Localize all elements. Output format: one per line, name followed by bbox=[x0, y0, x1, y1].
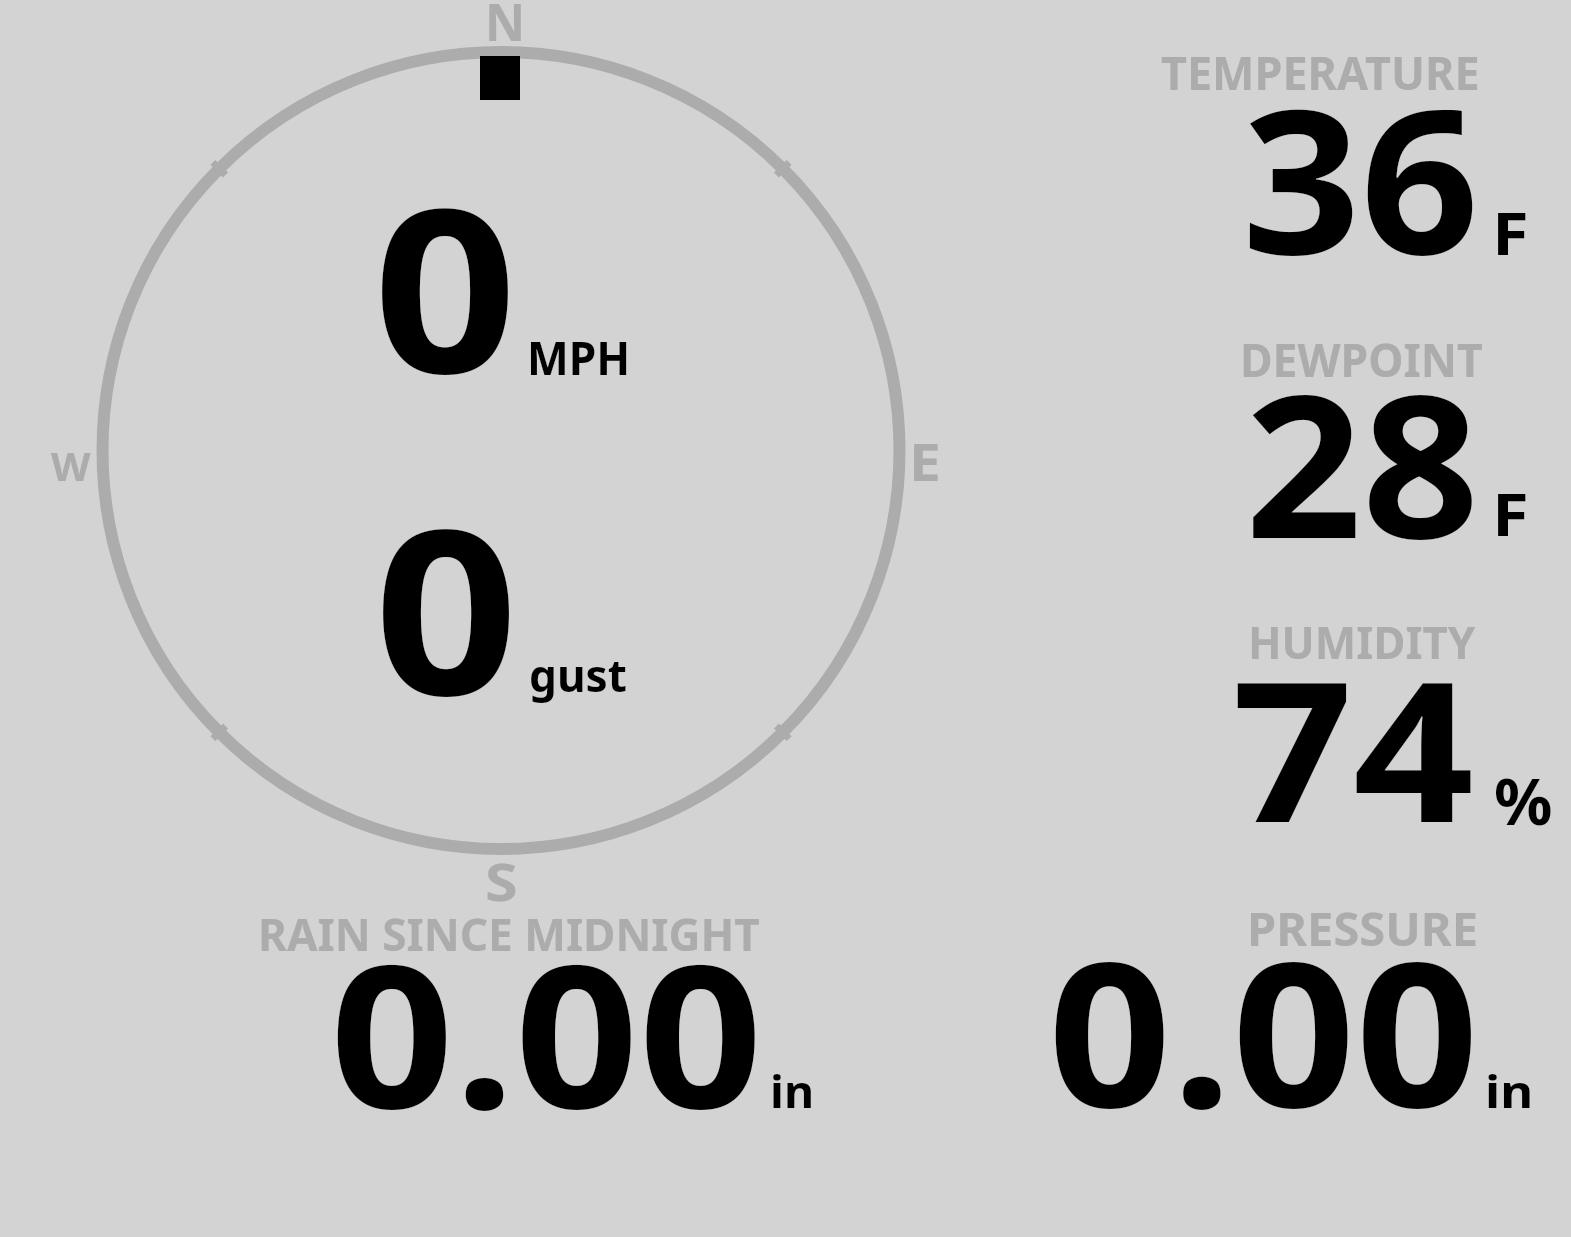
staticText: S bbox=[485, 845, 518, 916]
staticText: 28 bbox=[1245, 327, 1480, 596]
button[interactable]: Wind direction and speed bbox=[90, 0, 910, 910]
staticText: MPH bbox=[527, 325, 630, 389]
staticText: in bbox=[1485, 1060, 1534, 1121]
button[interactable] bbox=[230, 895, 850, 1125]
staticText: N bbox=[485, 0, 525, 57]
staticText: % bbox=[1494, 755, 1553, 844]
button[interactable] bbox=[1100, 30, 1571, 290]
staticText: 0.00 bbox=[1048, 894, 1480, 1165]
staticText: F bbox=[1492, 192, 1530, 272]
staticText: RAIN SINCE MIDNIGHT bbox=[258, 903, 760, 964]
staticText: 36 bbox=[1242, 41, 1479, 312]
staticText: 0 bbox=[374, 451, 519, 762]
staticText: 0 bbox=[373, 131, 518, 439]
staticText: TEMPERATURE bbox=[1161, 41, 1480, 103]
staticText: W bbox=[51, 440, 91, 493]
staticText: PRESSURE bbox=[1247, 896, 1478, 960]
button[interactable] bbox=[1100, 600, 1571, 855]
button[interactable] bbox=[1100, 315, 1571, 575]
staticText: 0.00 bbox=[330, 896, 763, 1166]
staticText: F bbox=[1492, 473, 1530, 553]
staticText: gust bbox=[529, 644, 627, 705]
staticText: in bbox=[770, 1060, 815, 1121]
staticText: HUMIDITY bbox=[1248, 612, 1476, 672]
staticText: 74 bbox=[1232, 615, 1475, 878]
staticText: DEWPOINT bbox=[1240, 326, 1483, 391]
staticText: E bbox=[909, 425, 942, 496]
button[interactable] bbox=[1020, 895, 1571, 1125]
